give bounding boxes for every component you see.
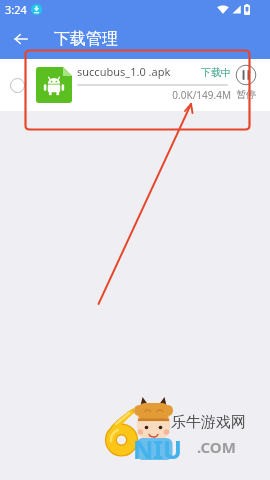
button[interactable]: Pause download <box>232 65 260 105</box>
staticText: 乐牛游戏网 <box>171 413 246 432</box>
button[interactable]: Select item <box>4 72 31 99</box>
staticText: 3:24 <box>5 2 27 17</box>
staticText: 下载管理 <box>54 29 118 49</box>
staticText: .COM <box>197 437 236 457</box>
staticText: 0.0K/149.4M <box>120 88 231 102</box>
staticText: 下载中 <box>201 66 231 79</box>
staticText: succubus_1.0 .apk <box>77 64 171 79</box>
staticText: 暂停 <box>236 88 256 101</box>
staticText: NIU <box>133 432 182 466</box>
button[interactable]: Back <box>0 18 42 59</box>
